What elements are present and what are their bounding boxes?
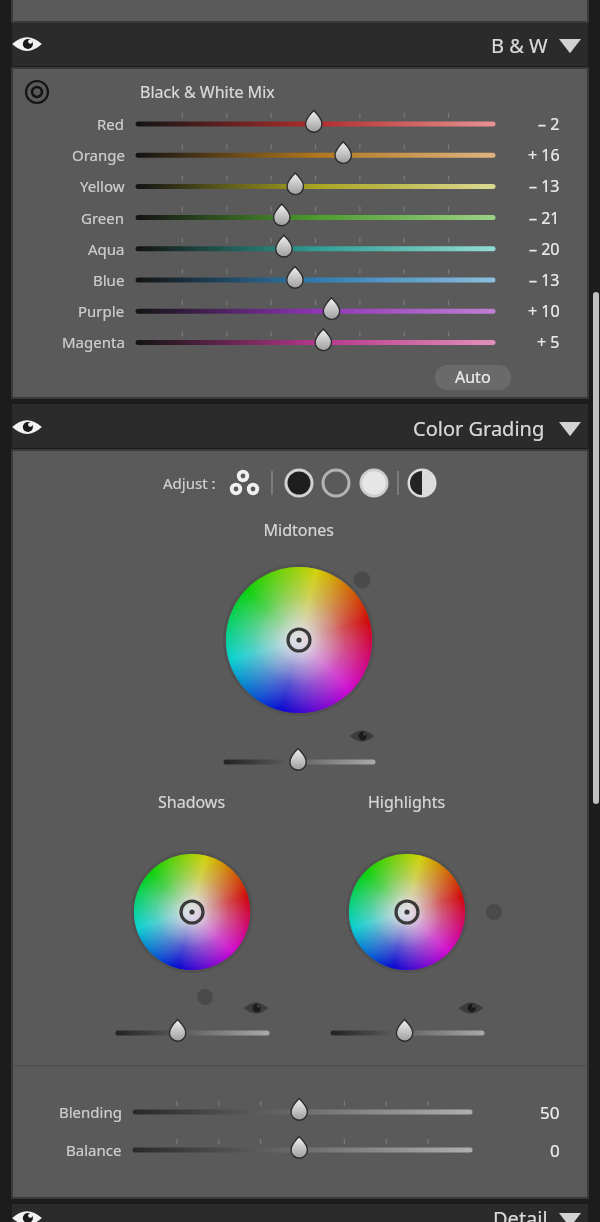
button[interactable]: Highlights color wheel <box>349 854 465 970</box>
button[interactable] <box>20 264 576 294</box>
button[interactable] <box>114 1021 272 1049</box>
button[interactable]: Preview shadows <box>245 997 267 1019</box>
button[interactable]: Shadows wheel <box>268 468 298 498</box>
button[interactable] <box>12 0 588 22</box>
button[interactable] <box>222 748 378 776</box>
button[interactable]: Toggle B and W panel visibility <box>16 33 40 57</box>
button[interactable] <box>12 1204 588 1222</box>
button[interactable] <box>435 365 511 390</box>
button[interactable]: Preview midtones <box>351 724 373 746</box>
button[interactable] <box>12 404 588 448</box>
button[interactable]: Highlights wheel <box>345 468 375 498</box>
button[interactable] <box>20 326 576 356</box>
button[interactable] <box>20 202 576 232</box>
button[interactable] <box>20 1134 576 1166</box>
button[interactable]: Midtones color wheel <box>226 567 372 713</box>
button[interactable] <box>20 1096 576 1128</box>
button[interactable]: Midtones wheel <box>306 468 336 498</box>
button[interactable]: Toggle Color Grading panel visibility <box>16 415 40 439</box>
button[interactable] <box>20 295 576 325</box>
button[interactable]: All color wheels <box>218 467 250 499</box>
button[interactable] <box>20 109 576 139</box>
button[interactable]: Shadows color wheel <box>134 854 250 970</box>
button[interactable] <box>12 22 588 66</box>
button[interactable]: Global wheel <box>393 468 423 498</box>
button[interactable] <box>12 68 588 398</box>
button[interactable] <box>12 450 588 1198</box>
button[interactable] <box>330 1021 488 1049</box>
button[interactable] <box>20 171 576 201</box>
button[interactable]: Preview highlights <box>460 997 482 1019</box>
button[interactable] <box>20 140 576 170</box>
button[interactable] <box>20 233 576 263</box>
